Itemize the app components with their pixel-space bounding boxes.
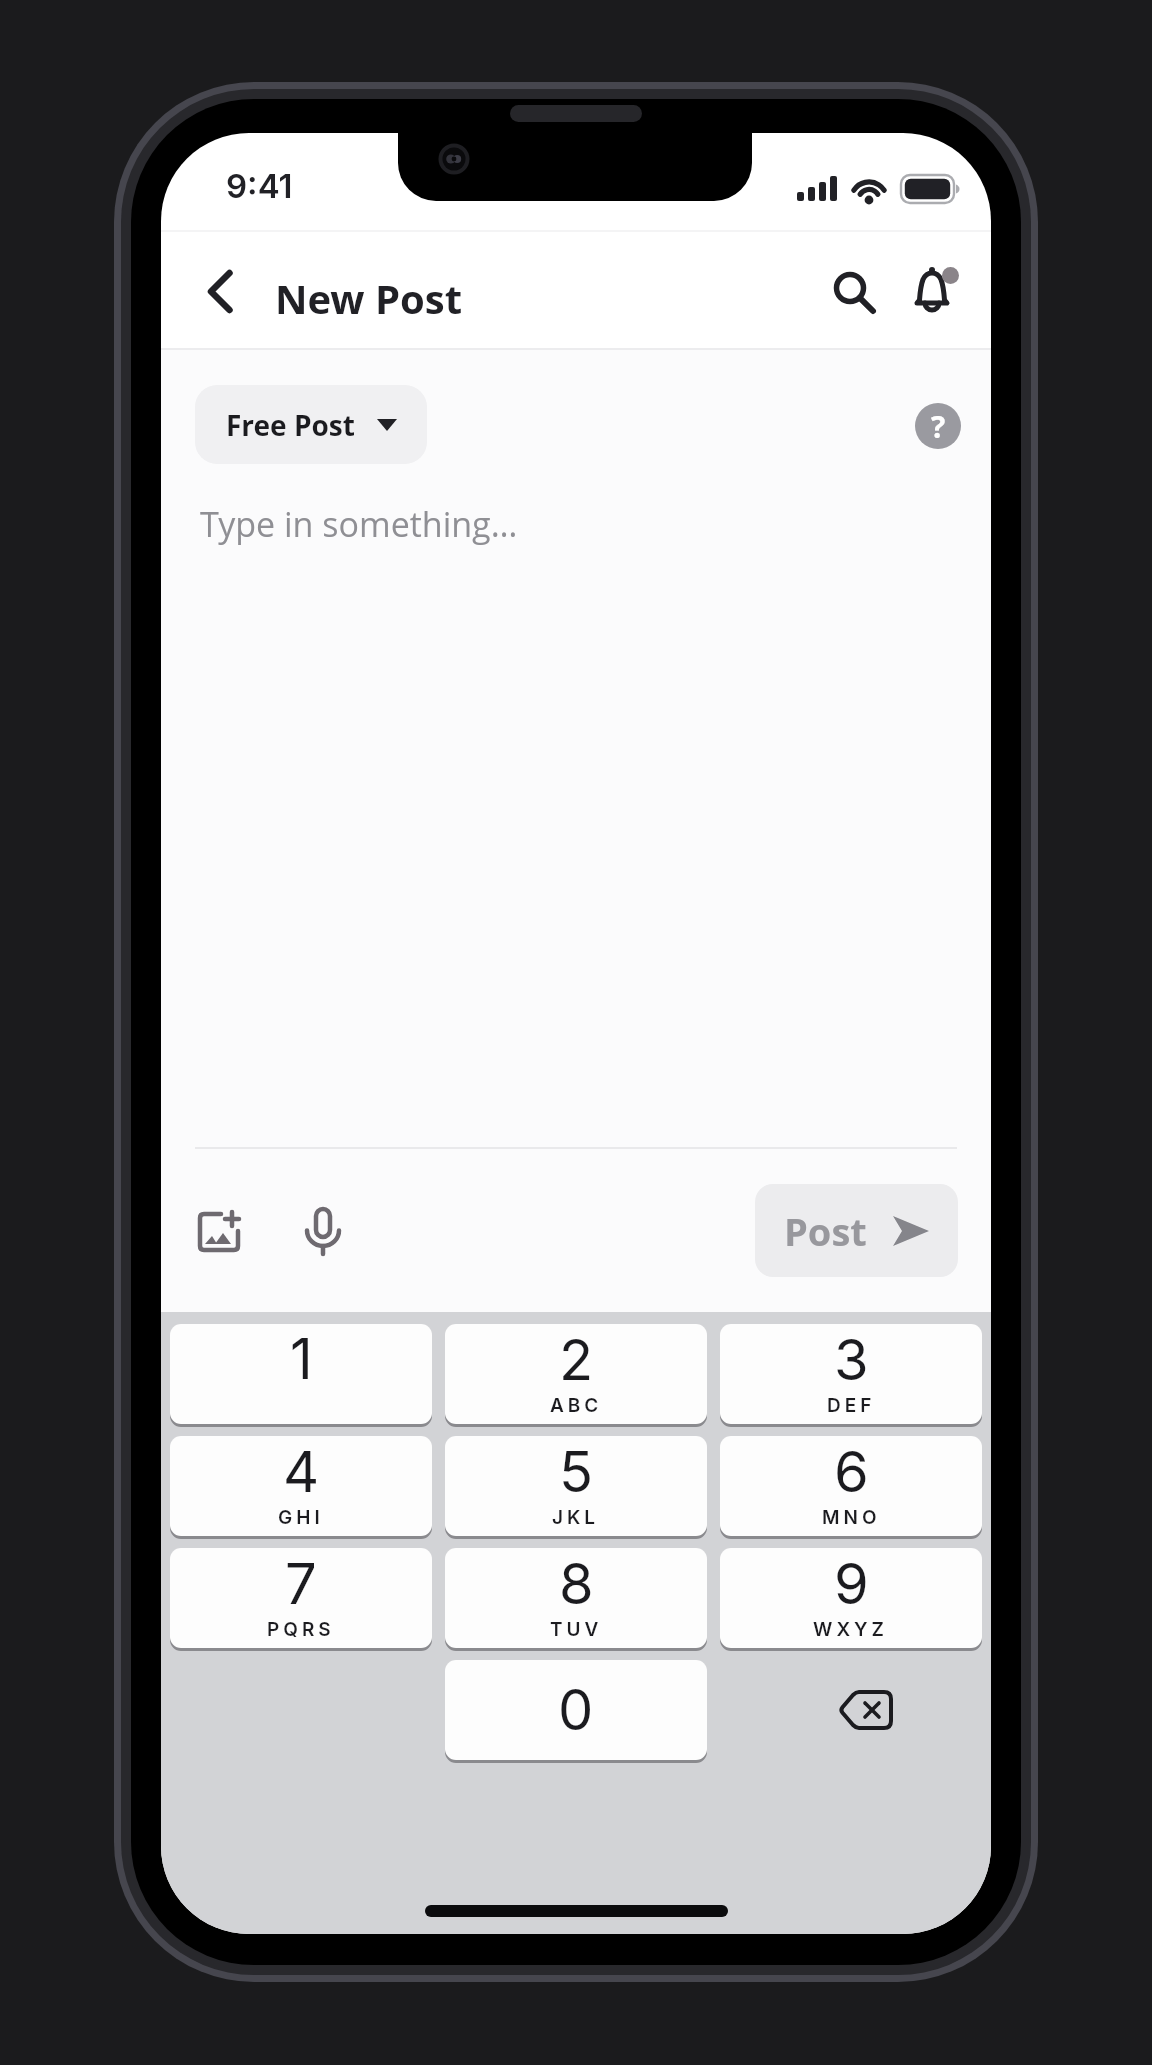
staticText: 6 bbox=[834, 1438, 869, 1506]
staticText: Post bbox=[784, 1205, 867, 1257]
staticText: JKL bbox=[552, 1506, 600, 1529]
staticText: 4 bbox=[283, 1438, 320, 1506]
staticText: Free Post bbox=[226, 406, 355, 444]
staticText: PQRS bbox=[267, 1618, 335, 1641]
staticText: GHI bbox=[278, 1506, 324, 1529]
staticText: 5 bbox=[559, 1438, 594, 1506]
button[interactable] bbox=[299, 1205, 347, 1261]
staticText: 9:41 bbox=[226, 166, 293, 206]
button[interactable]: ? bbox=[915, 403, 961, 449]
staticText: 3 bbox=[834, 1326, 869, 1394]
button[interactable]: 9 bbox=[720, 1548, 982, 1648]
button[interactable] bbox=[827, 267, 879, 319]
button[interactable]: 5 bbox=[445, 1436, 707, 1536]
button[interactable]: 1 bbox=[170, 1324, 432, 1424]
staticText: 2 bbox=[559, 1326, 594, 1394]
button[interactable] bbox=[826, 1660, 906, 1760]
staticText: WXYZ bbox=[813, 1618, 889, 1641]
staticText: 7 bbox=[285, 1550, 317, 1618]
button[interactable]: Post bbox=[755, 1184, 958, 1277]
staticText: DEF bbox=[827, 1394, 876, 1417]
button[interactable]: 4 bbox=[170, 1436, 432, 1536]
button[interactable]: 7 bbox=[170, 1548, 432, 1648]
button[interactable] bbox=[199, 271, 243, 313]
button[interactable] bbox=[909, 263, 965, 319]
button[interactable] bbox=[193, 1207, 245, 1259]
staticText: MNO bbox=[822, 1506, 881, 1529]
button[interactable]: 3 bbox=[720, 1324, 982, 1424]
button[interactable]: 0 bbox=[445, 1660, 707, 1760]
button[interactable]: 2 bbox=[445, 1324, 707, 1424]
staticText: 9 bbox=[834, 1550, 869, 1618]
staticText: Type in something… bbox=[200, 501, 518, 547]
staticText: ? bbox=[931, 406, 946, 447]
button[interactable]: 8 bbox=[445, 1548, 707, 1648]
button[interactable]: 6 bbox=[720, 1436, 982, 1536]
staticText: New Post bbox=[275, 271, 463, 315]
staticText: 8 bbox=[559, 1550, 594, 1618]
staticText: TUV bbox=[550, 1618, 603, 1641]
staticText: 1 bbox=[290, 1325, 313, 1393]
staticText: ABC bbox=[550, 1394, 603, 1417]
button[interactable]: Free Post bbox=[195, 385, 427, 464]
staticText: 0 bbox=[558, 1676, 594, 1744]
